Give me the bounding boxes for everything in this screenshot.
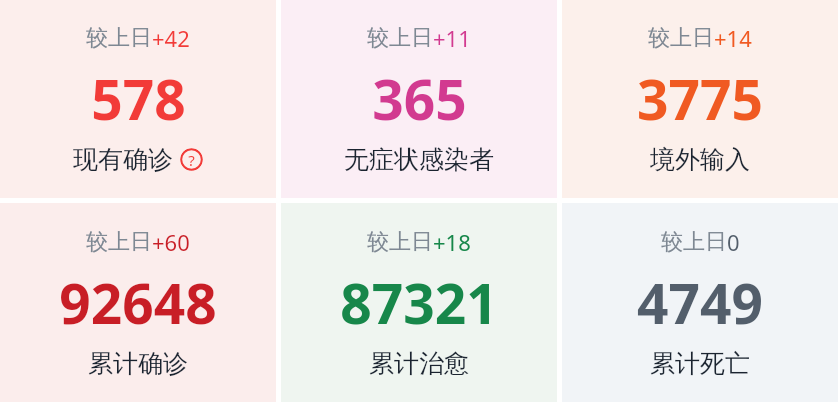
staticText: 较上日 (367, 228, 433, 256)
button[interactable]: 说明 (180, 148, 203, 171)
staticText: 较上日 (86, 228, 152, 256)
staticText: ? (188, 150, 195, 170)
button[interactable]: 较上日 (281, 203, 557, 402)
staticText: 92648 (59, 265, 217, 340)
staticText: 累计治愈 (369, 348, 469, 379)
staticText: 累计确诊 (88, 348, 188, 379)
staticText: +18 (433, 227, 471, 257)
staticText: +42 (152, 23, 190, 53)
staticText: +14 (714, 23, 752, 53)
staticText: 累计死亡 (650, 348, 750, 379)
staticText: 境外输入 (650, 144, 750, 175)
button[interactable]: 较上日 (281, 0, 557, 198)
button[interactable]: 较上日 (562, 203, 838, 402)
button[interactable]: 较上日 (0, 0, 276, 198)
staticText: 较上日 (661, 228, 727, 256)
button[interactable]: 较上日 (0, 203, 276, 402)
staticText: 87321 (340, 265, 498, 340)
staticText: +11 (433, 23, 471, 53)
button[interactable]: 较上日 (562, 0, 838, 198)
staticText: 现有确诊 (73, 144, 173, 175)
staticText: 无症状感染者 (344, 144, 494, 175)
staticText: 365 (372, 61, 467, 136)
staticText: 较上日 (648, 24, 714, 52)
staticText: 3775 (637, 61, 763, 136)
staticText: 0 (727, 227, 740, 257)
staticText: 4749 (637, 265, 763, 340)
staticText: 578 (91, 61, 186, 136)
staticText: +60 (152, 227, 190, 257)
staticText: 较上日 (367, 24, 433, 52)
staticText: 较上日 (86, 24, 152, 52)
